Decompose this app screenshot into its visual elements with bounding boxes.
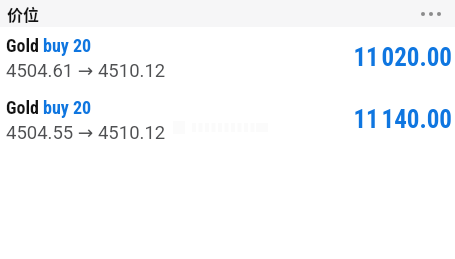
button[interactable]: Gold buy 20 [0, 33, 455, 95]
staticText: 11 020.00 [353, 43, 452, 72]
staticText: 11 140.00 [353, 105, 452, 134]
staticText: 4504.61 → 4510.12 [6, 60, 166, 82]
staticText: 4504.55 → 4510.12 [6, 122, 166, 144]
staticText: Gold buy 20 [6, 35, 92, 56]
button[interactable]: Gold buy 20 [0, 95, 455, 157]
button[interactable]: More options [421, 12, 441, 16]
staticText: 价位 [7, 2, 40, 25]
staticText: Gold buy 20 [6, 97, 92, 118]
